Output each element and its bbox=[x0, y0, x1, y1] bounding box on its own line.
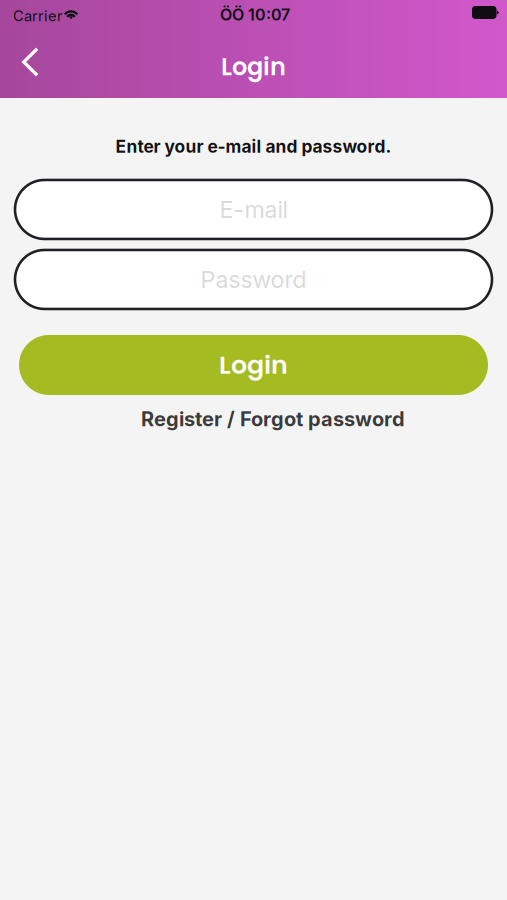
staticText: Login bbox=[219, 347, 288, 383]
staticText: Login bbox=[221, 50, 286, 84]
button[interactable]: Password bbox=[15, 250, 492, 309]
button[interactable]: Register / Forgot password bbox=[141, 407, 405, 431]
button[interactable]: Login bbox=[0, 335, 507, 395]
staticText: E-mail bbox=[219, 195, 287, 224]
staticText: Enter your e-mail and password. bbox=[115, 136, 391, 157]
button[interactable]: E-mail bbox=[15, 180, 492, 239]
staticText: Carrier bbox=[13, 7, 63, 25]
button[interactable]: Back bbox=[7, 40, 54, 84]
staticText: ÖÖ 10:07 bbox=[220, 5, 290, 24]
staticText: Password bbox=[200, 265, 306, 294]
staticText: Register / Forgot password bbox=[141, 407, 405, 431]
